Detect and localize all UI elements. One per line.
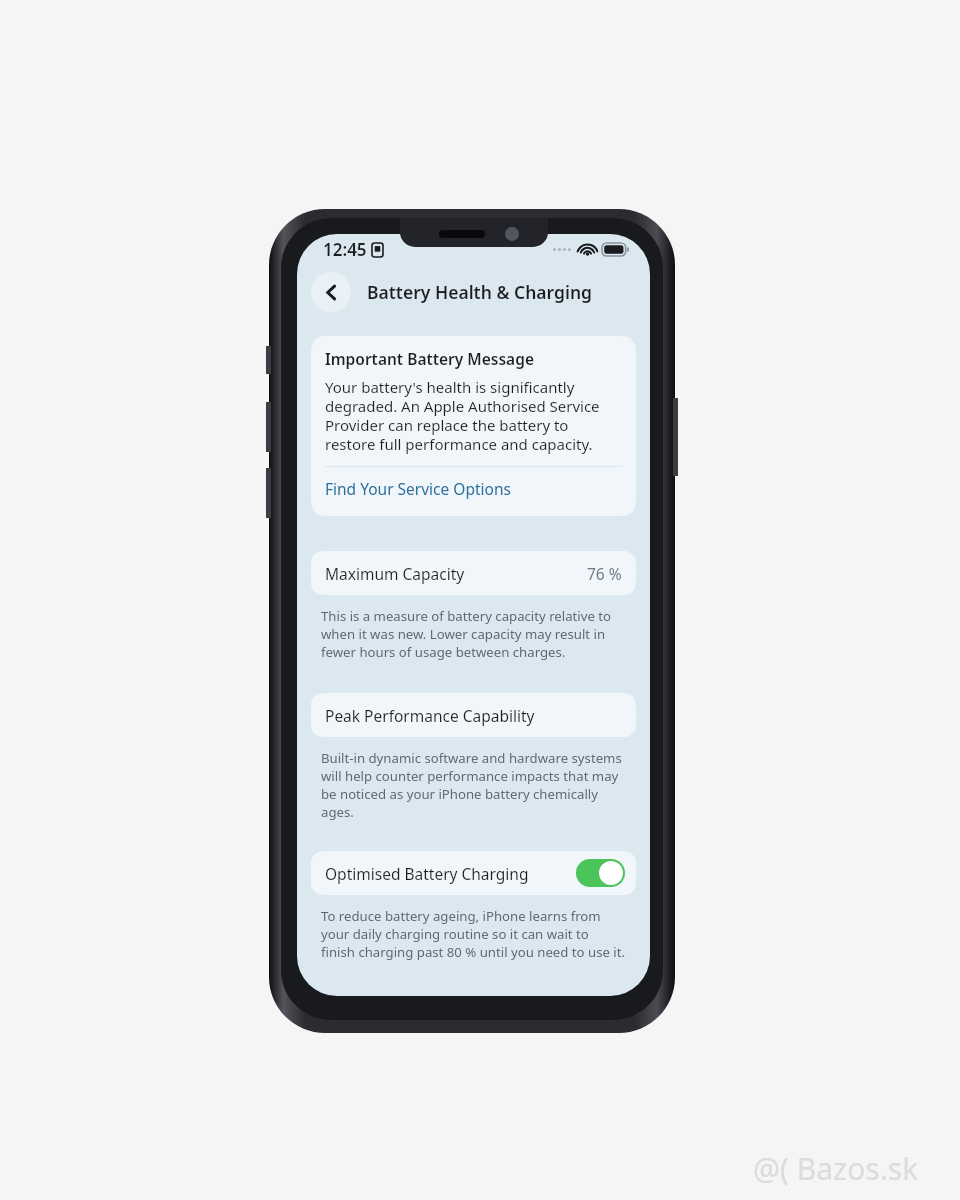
staticText: 76 % (587, 563, 622, 584)
staticText: 12:45 (323, 238, 367, 261)
staticText: Your battery's health is significantly d… (325, 377, 622, 455)
staticText: @( Bazos.sk (753, 1148, 919, 1189)
button[interactable]: Maximum Capacity (311, 551, 636, 595)
button[interactable]: Find Your Service Options (325, 467, 622, 510)
button[interactable]: Optimised Battery Charging (311, 851, 636, 895)
staticText: To reduce battery ageing, iPhone learns … (321, 907, 626, 961)
button[interactable]: Back (311, 272, 351, 312)
staticText: This is a measure of battery capacity re… (321, 607, 626, 661)
staticText: Maximum Capacity (325, 563, 465, 584)
staticText: Important Battery Message (325, 348, 534, 369)
staticText: Find Your Service Options (325, 478, 511, 499)
staticText: Peak Performance Capability (325, 705, 535, 726)
button[interactable]: Peak Performance Capability (311, 693, 636, 737)
staticText: Optimised Battery Charging (325, 863, 529, 884)
staticText: Built-in dynamic software and hardware s… (321, 749, 626, 821)
staticText: Battery Health & Charging (367, 280, 592, 304)
